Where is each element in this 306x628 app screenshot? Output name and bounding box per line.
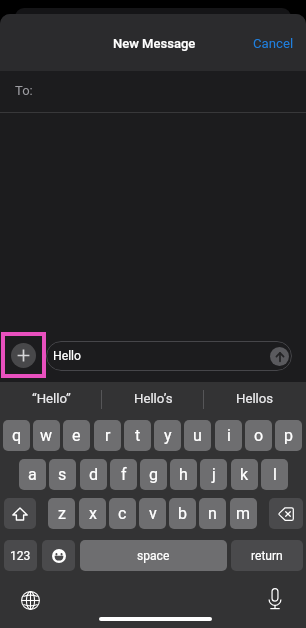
staticText: n	[208, 504, 217, 523]
staticText: f	[121, 465, 127, 484]
staticText: s	[58, 465, 67, 484]
button[interactable]: return	[231, 540, 303, 571]
staticText: Hellos	[236, 391, 274, 406]
staticText: l	[273, 465, 277, 484]
button[interactable]: Hello	[46, 341, 292, 371]
staticText: u	[193, 426, 202, 445]
staticText: r	[105, 426, 111, 445]
staticText: “Hello”	[32, 391, 71, 406]
button[interactable]: k	[231, 459, 258, 490]
button[interactable]: t	[124, 420, 151, 451]
button[interactable]: Dictate	[261, 585, 289, 613]
button[interactable]: n	[199, 498, 226, 529]
button[interactable]: d	[80, 459, 107, 490]
button[interactable]: w	[33, 420, 60, 451]
button[interactable]: q	[3, 420, 30, 451]
staticText: w	[40, 426, 53, 445]
button[interactable]: p	[275, 420, 302, 451]
staticText: return	[251, 549, 283, 563]
button[interactable]: x	[79, 498, 106, 529]
button[interactable]: b	[169, 498, 196, 529]
staticText: y	[164, 426, 172, 445]
staticText: k	[240, 465, 249, 484]
staticText: p	[284, 426, 293, 445]
staticText: Hello’s	[134, 391, 173, 406]
button[interactable]: Shift	[4, 498, 36, 529]
button[interactable]: To:	[0, 71, 306, 113]
button[interactable]: h	[170, 459, 197, 490]
staticText: x	[89, 504, 97, 523]
staticText: g	[149, 465, 158, 484]
staticText: space	[137, 549, 170, 563]
button[interactable]: Hellos	[207, 384, 303, 412]
staticText: e	[72, 426, 81, 445]
button[interactable]: Send	[270, 347, 289, 366]
button[interactable]: “Hello”	[3, 384, 99, 412]
staticText: b	[178, 504, 187, 523]
staticText: i	[227, 426, 231, 445]
button[interactable]: Backspace	[269, 498, 303, 529]
button[interactable]: f	[110, 459, 137, 490]
button[interactable]: s	[49, 459, 76, 490]
button[interactable]: Change keyboard	[16, 586, 44, 614]
button[interactable]: i	[215, 420, 242, 451]
staticText: a	[28, 465, 37, 484]
staticText: New Message	[113, 36, 196, 51]
staticText: t	[135, 426, 141, 445]
staticText: z	[58, 504, 66, 523]
button[interactable]: m	[230, 498, 257, 529]
button[interactable]: v	[139, 498, 166, 529]
button[interactable]: Cancel	[247, 31, 299, 56]
staticText: q	[12, 426, 22, 445]
button[interactable]: u	[184, 420, 211, 451]
staticText: 123	[10, 549, 31, 563]
button[interactable]: r	[94, 420, 121, 451]
button[interactable]: e	[63, 420, 90, 451]
button[interactable]: 123	[4, 540, 37, 571]
button[interactable]: a	[19, 459, 46, 490]
button[interactable]: g	[140, 459, 167, 490]
staticText: o	[254, 426, 264, 445]
staticText: Hello	[53, 349, 82, 363]
button[interactable]: c	[109, 498, 136, 529]
staticText: c	[118, 504, 127, 523]
staticText: v	[149, 504, 157, 523]
staticText: h	[179, 465, 188, 484]
button[interactable]: o	[245, 420, 272, 451]
button[interactable]: Emoji	[42, 540, 75, 571]
staticText: To:	[15, 83, 33, 98]
button[interactable]: space	[80, 540, 227, 571]
staticText: j	[212, 465, 216, 484]
button[interactable]: j	[200, 459, 227, 490]
button[interactable]: l	[261, 459, 288, 490]
button[interactable]: Hello’s	[105, 384, 201, 412]
button[interactable]: Add attachment	[1, 332, 46, 378]
button[interactable]: y	[154, 420, 181, 451]
button[interactable]: z	[48, 498, 75, 529]
staticText: m	[236, 504, 251, 523]
staticText: d	[89, 465, 99, 484]
staticText: Cancel	[253, 36, 294, 51]
